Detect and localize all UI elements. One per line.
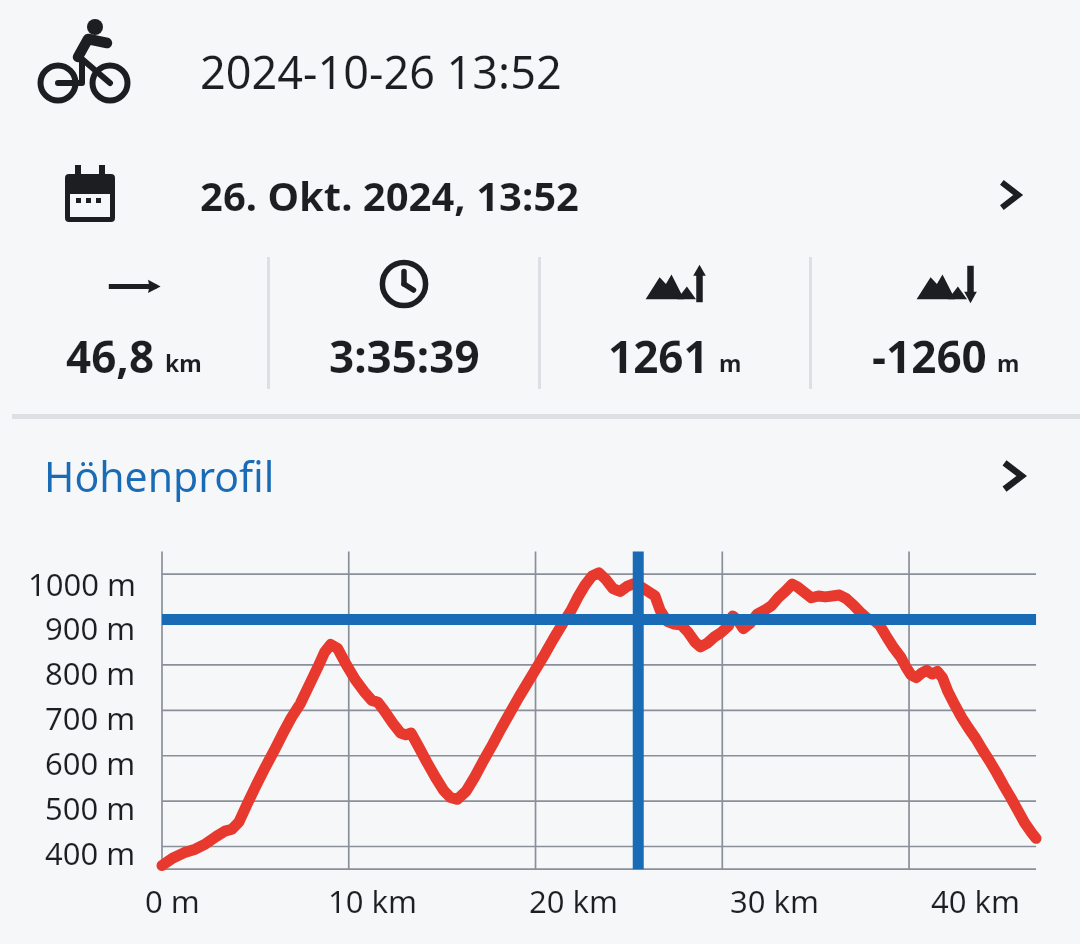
button[interactable]: Höhenprofil — [0, 419, 1080, 533]
staticText: 40 km — [931, 880, 1021, 922]
staticText: 10 km — [328, 880, 418, 922]
staticText: 700 m — [45, 697, 136, 739]
other: Cycling activity — [34, 39, 134, 103]
button[interactable]: 1261 — [541, 248, 809, 398]
staticText: 1261 — [608, 326, 709, 386]
staticText: m — [997, 347, 1020, 378]
staticText: m — [719, 347, 742, 378]
button[interactable]: 3:35:39 — [270, 248, 538, 398]
staticText: Höhenprofil — [44, 448, 275, 504]
staticText: 800 m — [45, 652, 136, 694]
staticText: 900 m — [45, 607, 136, 649]
staticText: 1000 m — [28, 563, 136, 605]
button[interactable]: -1260 — [812, 248, 1080, 398]
staticText: 3:35:39 — [329, 326, 480, 386]
staticText: 20 km — [529, 880, 619, 922]
other: Open activity details — [988, 174, 1030, 216]
staticText: 46,8 — [66, 326, 155, 386]
staticText: 500 m — [45, 787, 136, 829]
staticText: 30 km — [730, 880, 820, 922]
staticText: 26. Okt. 2024, 13:52 — [200, 168, 579, 222]
staticText: km — [165, 347, 202, 378]
staticText: -1260 — [872, 326, 987, 386]
staticText: 600 m — [45, 742, 136, 784]
other: Open elevation profile — [990, 454, 1034, 498]
staticText: 2024-10-26 13:52 — [200, 41, 562, 102]
staticText: 400 m — [45, 832, 136, 874]
button[interactable]: 26. Okt. 2024, 13:52 — [0, 142, 1080, 248]
staticText: 0 m — [145, 880, 200, 922]
button[interactable]: 46,8 — [0, 248, 267, 398]
